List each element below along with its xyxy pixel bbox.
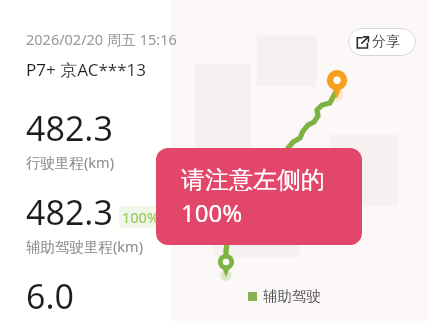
staticText: P7+ 京AC***13 — [26, 58, 146, 81]
button[interactable]: Share — [348, 28, 416, 56]
button[interactable]: 辅助驾驶 — [248, 287, 321, 305]
staticText: 2026/02/20 周五 15:16 — [26, 29, 177, 49]
staticText: 6.0 — [26, 273, 75, 319]
staticText: 行驶里程(km) — [26, 152, 115, 172]
button[interactable]: 请注意左侧的 100% — [156, 148, 362, 245]
staticText: 482.3 — [26, 105, 113, 151]
staticText: 辅助驾驶里程(km) — [26, 236, 144, 256]
staticText: 分享 — [372, 33, 400, 51]
staticText: 辅助驾驶 — [263, 287, 321, 305]
staticText: 请注意左侧的 100% — [181, 165, 325, 229]
staticText: 100% — [122, 207, 159, 227]
staticText: 482.3 — [26, 189, 113, 235]
